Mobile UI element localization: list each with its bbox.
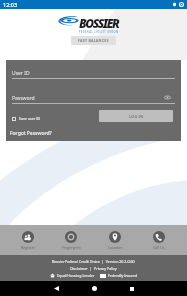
staticText: BOSSIER <box>79 15 119 31</box>
staticText: Password <box>12 95 35 102</box>
button[interactable]: Forgot Password? <box>10 129 52 138</box>
staticText: Register <box>21 245 35 250</box>
button[interactable]: Register <box>6 229 49 252</box>
staticText: Save user ID <box>19 116 41 121</box>
button[interactable]: Location <box>93 229 137 252</box>
staticText: Equal Housing Lender <box>57 273 95 278</box>
staticText: FAST BALANCES <box>78 38 109 43</box>
staticText: 12:03 <box>3 1 18 8</box>
staticText: Location <box>108 245 123 250</box>
button[interactable]: Back <box>37 281 75 296</box>
staticText: Federally Insured <box>108 273 138 278</box>
button[interactable]: Recent apps <box>113 281 151 296</box>
staticText: User ID <box>12 70 30 77</box>
button[interactable]: Show password <box>163 93 172 102</box>
staticText: | <box>88 266 94 271</box>
staticText: Fingerprint <box>62 245 81 250</box>
button[interactable]: Fingerprint <box>49 229 93 252</box>
button[interactable]: Call Us <box>137 229 181 252</box>
staticText: Call Us <box>153 245 165 250</box>
button[interactable]: Home <box>75 281 113 296</box>
button[interactable]: LOG IN <box>99 110 173 122</box>
button[interactable]: FAST BALANCES <box>71 36 116 45</box>
button[interactable]: Disclaimer <box>70 266 88 271</box>
button[interactable]: Privacy Policy <box>94 266 117 271</box>
staticText: LOG IN <box>129 114 144 119</box>
button[interactable]: Save user ID <box>10 114 43 123</box>
staticText: FEDERAL CREDIT UNION <box>79 30 119 34</box>
staticText: Bossier Federal Credit Union | Version 2… <box>52 259 135 264</box>
